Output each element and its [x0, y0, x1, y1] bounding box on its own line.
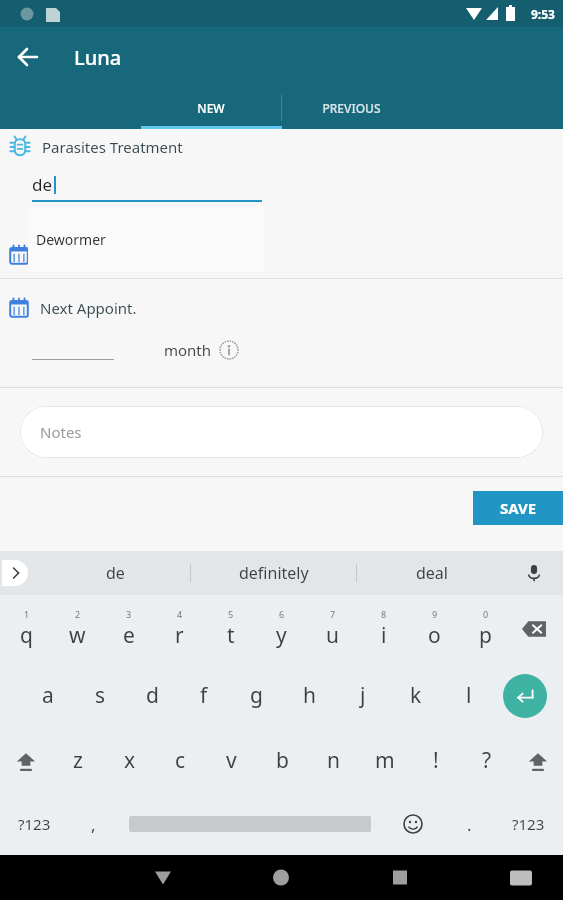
- staticText: .: [467, 813, 472, 836]
- button[interactable]: Expand suggestions: [2, 560, 28, 586]
- button[interactable]: Dewormer: [28, 207, 263, 272]
- button[interactable]: de: [40, 551, 190, 595]
- button[interactable]: PREVIOUS: [281, 87, 422, 129]
- button[interactable]: a: [22, 663, 74, 728]
- staticText: c: [175, 746, 186, 775]
- staticText: l: [466, 681, 472, 710]
- button[interactable]: Voice input: [519, 558, 549, 588]
- staticText: i: [381, 621, 387, 650]
- staticText: 1: [24, 608, 30, 620]
- button[interactable]: m: [359, 728, 410, 793]
- staticText: ,: [91, 813, 96, 836]
- button[interactable]: s: [74, 663, 126, 728]
- staticText: 3: [126, 608, 132, 620]
- button[interactable]: ?123: [494, 793, 563, 855]
- staticText: SAVE: [500, 498, 537, 518]
- staticText: Dewormer: [36, 230, 106, 249]
- button[interactable]: x: [104, 728, 155, 793]
- staticText: b: [276, 746, 289, 775]
- staticText: m: [375, 746, 395, 775]
- button[interactable]: Emoji: [381, 793, 444, 855]
- button[interactable]: Back: [0, 29, 56, 85]
- staticText: a: [42, 681, 54, 710]
- button[interactable]: Backspace: [517, 612, 551, 646]
- button[interactable]: k: [389, 663, 442, 728]
- staticText: x: [124, 746, 136, 775]
- staticText: d: [146, 681, 159, 710]
- button[interactable]: 3: [103, 595, 154, 663]
- staticText: j: [360, 681, 366, 710]
- staticText: Notes: [40, 422, 82, 442]
- staticText: q: [20, 621, 33, 650]
- staticText: ?: [482, 746, 492, 775]
- staticText: month: [164, 340, 212, 360]
- button[interactable]: ?: [461, 728, 512, 793]
- button[interactable]: l: [442, 663, 495, 728]
- staticText: definitely: [239, 562, 309, 584]
- staticText: de: [32, 173, 53, 196]
- staticText: k: [410, 681, 422, 710]
- staticText: Parasites Treatment: [42, 137, 183, 157]
- staticText: 7: [330, 608, 336, 620]
- staticText: 6: [279, 608, 285, 620]
- button[interactable]: b: [257, 728, 308, 793]
- button[interactable]: h: [283, 663, 336, 728]
- button[interactable]: 1: [0, 595, 52, 663]
- button[interactable]: 6: [256, 595, 307, 663]
- button[interactable]: definitely: [191, 551, 356, 595]
- button[interactable]: z: [52, 728, 104, 793]
- staticText: NEW: [197, 100, 225, 116]
- button[interactable]: .: [444, 793, 494, 855]
- staticText: 9: [432, 608, 438, 620]
- staticText: Next Appoint.: [40, 298, 137, 318]
- button[interactable]: Space: [118, 793, 381, 855]
- button[interactable]: 4: [154, 595, 205, 663]
- button[interactable]: c: [155, 728, 206, 793]
- staticText: 0: [483, 608, 489, 620]
- staticText: 8: [381, 608, 387, 620]
- button[interactable]: g: [230, 663, 283, 728]
- button[interactable]: n: [308, 728, 359, 793]
- staticText: f: [200, 681, 208, 710]
- button[interactable]: Enter: [503, 674, 547, 718]
- button[interactable]: v: [206, 728, 257, 793]
- button[interactable]: ,: [68, 793, 118, 855]
- staticText: v: [226, 746, 237, 775]
- button[interactable]: ?123: [0, 793, 68, 855]
- button[interactable]: Shift: [0, 728, 52, 793]
- button[interactable]: 7: [307, 595, 358, 663]
- staticText: t: [227, 621, 235, 650]
- staticText: ?123: [18, 814, 51, 834]
- staticText: 4: [177, 608, 183, 620]
- staticText: PREVIOUS: [322, 100, 381, 116]
- staticText: r: [175, 621, 184, 650]
- button[interactable]: 9: [409, 595, 460, 663]
- button[interactable]: d: [126, 663, 178, 728]
- button[interactable]: 2: [52, 595, 103, 663]
- staticText: u: [326, 621, 339, 650]
- staticText: y: [276, 621, 287, 650]
- staticText: 2: [75, 608, 81, 620]
- staticText: ?123: [512, 814, 545, 834]
- button[interactable]: 8: [358, 595, 409, 663]
- staticText: e: [123, 621, 135, 650]
- button[interactable]: NEW: [140, 87, 281, 129]
- button[interactable]: j: [336, 663, 389, 728]
- staticText: h: [303, 681, 316, 710]
- button[interactable]: !: [410, 728, 461, 793]
- staticText: o: [428, 621, 441, 650]
- button[interactable]: 0: [460, 595, 511, 663]
- staticText: g: [250, 681, 263, 710]
- button[interactable]: Shift: [512, 728, 563, 793]
- button[interactable]: Info: [218, 339, 240, 361]
- button[interactable]: f: [178, 663, 230, 728]
- button[interactable]: 5: [205, 595, 256, 663]
- staticText: 5: [228, 608, 234, 620]
- button[interactable]: Notes: [20, 406, 543, 458]
- staticText: z: [73, 746, 83, 775]
- staticText: w: [69, 621, 86, 650]
- button[interactable]: SAVE: [473, 491, 563, 525]
- staticText: deal: [416, 562, 448, 584]
- button[interactable]: deal: [357, 551, 507, 595]
- staticText: p: [479, 621, 492, 650]
